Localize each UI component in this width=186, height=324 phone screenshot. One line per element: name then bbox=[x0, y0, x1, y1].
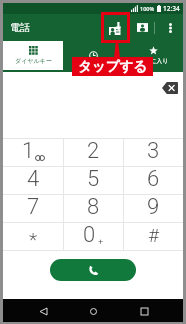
button[interactable]: お気に入り bbox=[123, 41, 183, 72]
button[interactable]: Recent apps bbox=[133, 300, 155, 322]
button[interactable]: 4 bbox=[3, 167, 63, 194]
button[interactable]: Add to contacts bbox=[101, 14, 130, 41]
staticText: 8 bbox=[87, 194, 100, 220]
button[interactable]: 3 bbox=[124, 139, 183, 166]
button[interactable]: 1 bbox=[3, 139, 63, 166]
staticText: 3 bbox=[147, 138, 160, 164]
staticText: タップする bbox=[78, 58, 148, 75]
staticText: 1 bbox=[22, 138, 35, 164]
button[interactable]: 8 bbox=[64, 195, 123, 222]
staticText: * bbox=[29, 228, 38, 250]
staticText: 100% bbox=[140, 5, 155, 12]
staticText: ダイヤルキー bbox=[15, 57, 52, 65]
button[interactable]: * bbox=[3, 223, 63, 250]
staticText: 12:34 bbox=[163, 4, 180, 13]
button[interactable]: 7 bbox=[3, 195, 63, 222]
button[interactable]: Backspace bbox=[162, 82, 178, 94]
button[interactable]: 6 bbox=[124, 167, 183, 194]
button[interactable]: ダイヤルキー bbox=[3, 41, 63, 72]
button[interactable]: Back bbox=[32, 300, 54, 322]
button[interactable]: Recents bbox=[63, 41, 123, 72]
button[interactable]: More options bbox=[158, 14, 182, 41]
staticText: 0 bbox=[83, 222, 96, 248]
button[interactable]: 9 bbox=[124, 195, 183, 222]
staticText: # bbox=[148, 224, 160, 246]
button[interactable]: Call bbox=[50, 259, 136, 281]
button[interactable]: Home bbox=[82, 300, 104, 322]
staticText: 5 bbox=[87, 166, 100, 192]
button[interactable]: Contacts bbox=[130, 14, 154, 41]
staticText: 2 bbox=[87, 138, 100, 164]
staticText: 9 bbox=[147, 194, 160, 220]
staticText: お気に入り bbox=[138, 57, 169, 65]
button[interactable]: 5 bbox=[64, 167, 123, 194]
staticText: 電話 bbox=[10, 21, 30, 34]
button[interactable]: 0 bbox=[64, 223, 123, 250]
staticText: 4 bbox=[27, 166, 40, 192]
staticText: 7 bbox=[27, 194, 40, 220]
staticText: + bbox=[98, 235, 104, 247]
button[interactable]: 2 bbox=[64, 139, 123, 166]
button[interactable]: # bbox=[124, 223, 183, 250]
staticText: 6 bbox=[147, 166, 160, 192]
